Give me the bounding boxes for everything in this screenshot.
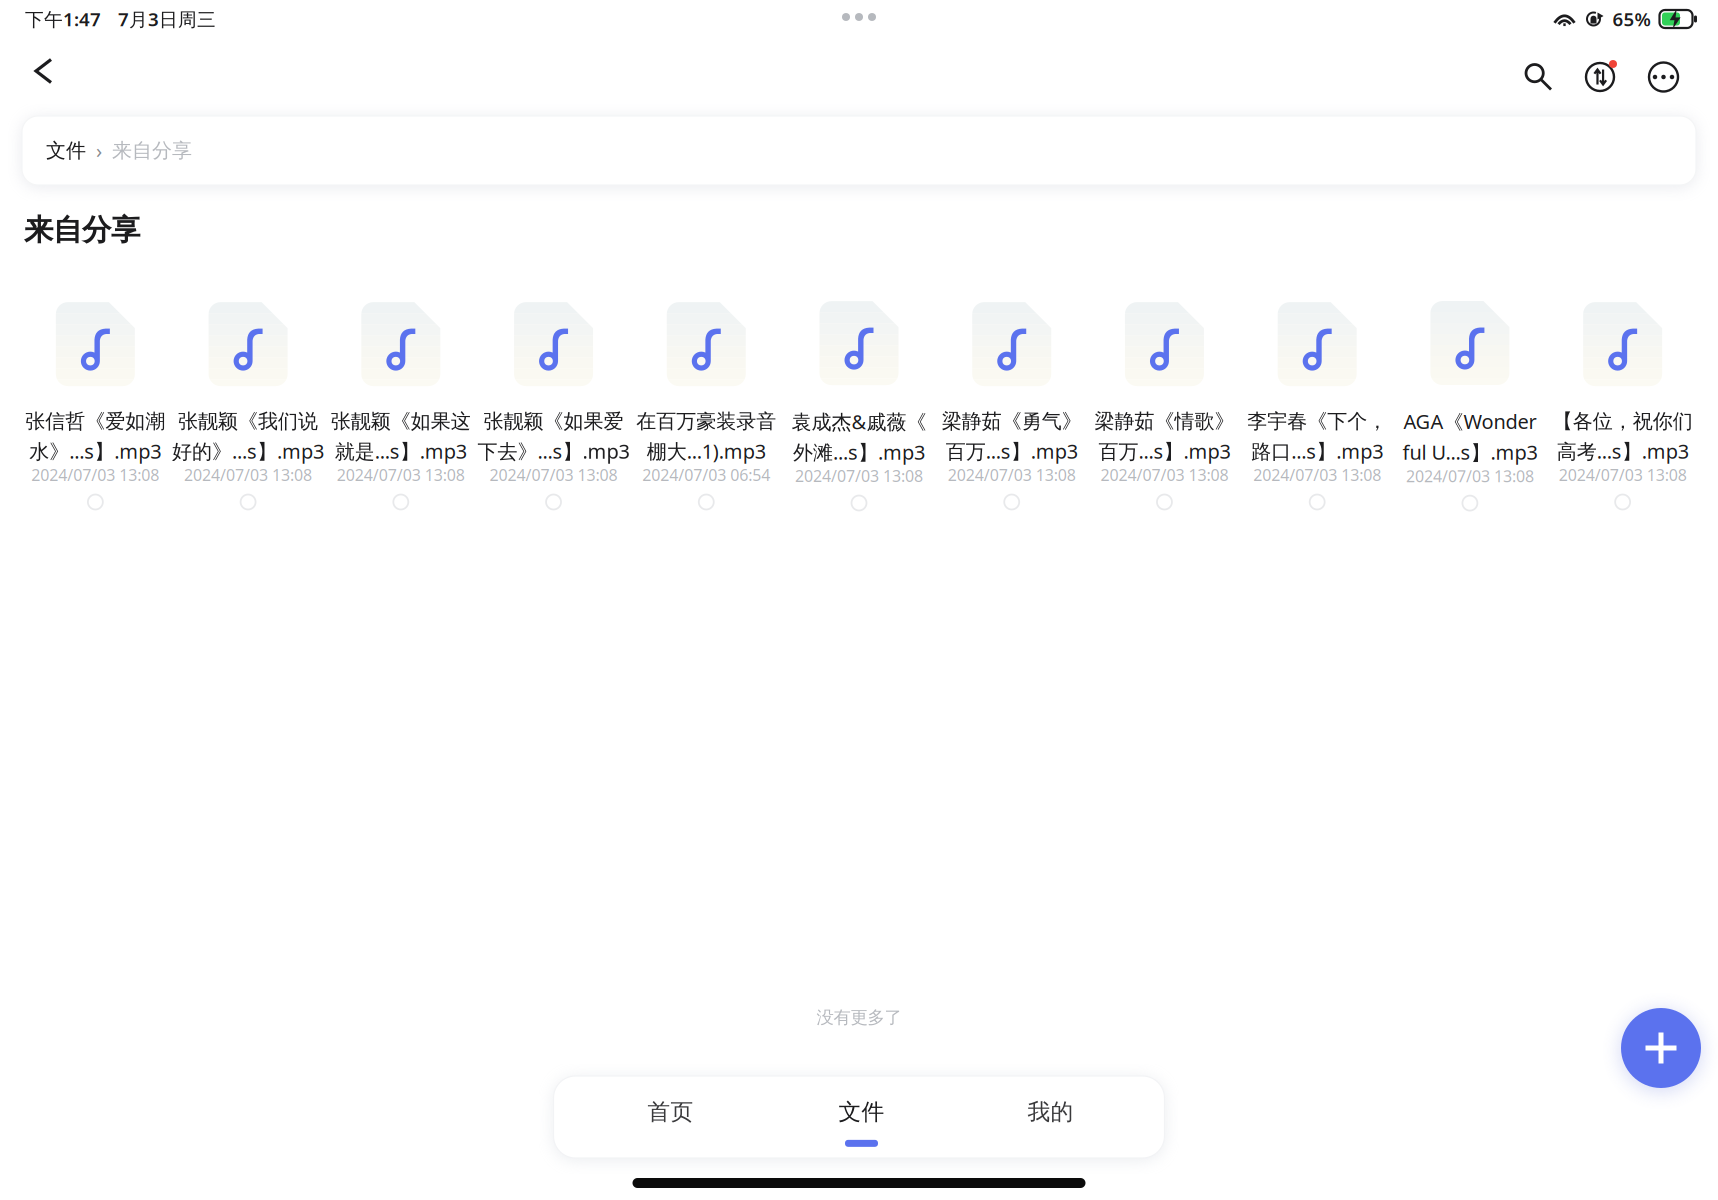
staticText: 张靓颖《如果这: [331, 409, 471, 434]
button[interactable]: 文件: [46, 138, 86, 163]
staticText: 梁静茹《情歌》: [1094, 409, 1234, 434]
staticText: 2024/07/03 13:08: [184, 464, 312, 485]
button[interactable]: Add: [1621, 1008, 1701, 1088]
staticText: 棚大...1).mp3: [647, 438, 766, 464]
staticText: 好的》...s】.mp3: [172, 438, 324, 464]
staticText: 2024/07/03 13:08: [1100, 464, 1228, 485]
button[interactable]: 张信哲《爱如潮: [19, 302, 172, 509]
button[interactable]: 梁静茹《情歌》: [1088, 302, 1241, 509]
staticText: 2024/07/03 13:08: [337, 464, 465, 485]
button[interactable]: 在百万豪装录音: [630, 302, 783, 509]
button[interactable]: 梁静茹《勇气》: [935, 302, 1088, 509]
staticText: AGA《Wonder: [1403, 408, 1536, 435]
button[interactable]: AGA《Wonder: [1393, 301, 1546, 511]
staticText: ›: [86, 137, 112, 164]
staticText: 下午1:47: [25, 7, 101, 31]
staticText: 首页: [647, 1098, 693, 1126]
staticText: 7月3日周三: [118, 7, 216, 31]
button[interactable]: 张靓颖《如果这: [324, 302, 477, 509]
staticText: 张信哲《爱如潮: [25, 409, 165, 434]
staticText: 2024/07/03 13:08: [1406, 465, 1534, 487]
staticText: 2024/07/03 13:08: [31, 464, 159, 485]
staticText: 我的: [1027, 1098, 1073, 1126]
button[interactable]: 张靓颖《如果爱: [477, 302, 630, 509]
staticText: 张靓颖《我们说: [178, 409, 318, 434]
button[interactable]: 张靓颖《我们说: [172, 302, 324, 509]
button[interactable]: 李宇春《下个，: [1241, 302, 1393, 509]
button[interactable]: Transfers: [1574, 51, 1626, 103]
staticText: 百万...s】.mp3: [946, 438, 1078, 464]
staticText: 水》...s】.mp3: [29, 438, 161, 464]
staticText: 李宇春《下个，: [1247, 409, 1387, 434]
button[interactable]: More: [1637, 50, 1690, 103]
staticText: 文件: [46, 138, 86, 163]
staticText: 路口...s】.mp3: [1251, 438, 1383, 464]
button[interactable]: 我的: [965, 1076, 1135, 1158]
button[interactable]: 文件: [776, 1076, 946, 1158]
staticText: 在百万豪装录音: [636, 409, 776, 434]
button[interactable]: 【各位，祝你们: [1546, 302, 1699, 509]
staticText: 来自分享: [112, 138, 192, 163]
button[interactable]: 袁成杰&戚薇《: [783, 301, 935, 510]
staticText: 2024/07/03 13:08: [1253, 464, 1381, 485]
staticText: 2024/07/03 13:08: [489, 464, 617, 485]
button[interactable]: Search: [1516, 54, 1561, 99]
button[interactable]: 首页: [585, 1076, 755, 1158]
staticText: 来自分享: [24, 212, 140, 248]
staticText: 没有更多了: [816, 1007, 901, 1028]
staticText: 2024/07/03 13:08: [948, 464, 1076, 485]
button[interactable]: Back: [22, 53, 65, 100]
staticText: 高考...s】.mp3: [1557, 438, 1689, 464]
staticText: 张靓颖《如果爱: [483, 409, 623, 434]
staticText: 【各位，祝你们: [1553, 409, 1693, 434]
staticText: 百万...s】.mp3: [1098, 438, 1230, 464]
staticText: 袁成杰&戚薇《: [791, 408, 926, 435]
staticText: 2024/07/03 13:08: [1559, 464, 1687, 485]
staticText: 外滩...s】.mp3: [793, 439, 925, 465]
staticText: 65%: [1612, 7, 1650, 31]
staticText: ful U...s】.mp3: [1402, 439, 1537, 465]
staticText: 下去》...s】.mp3: [477, 438, 629, 464]
staticText: 就是...s】.mp3: [335, 438, 467, 464]
staticText: 2024/07/03 06:54: [642, 464, 770, 485]
staticText: 梁静茹《勇气》: [942, 409, 1082, 434]
staticText: 文件: [838, 1098, 884, 1126]
staticText: 2024/07/03 13:08: [795, 465, 923, 486]
